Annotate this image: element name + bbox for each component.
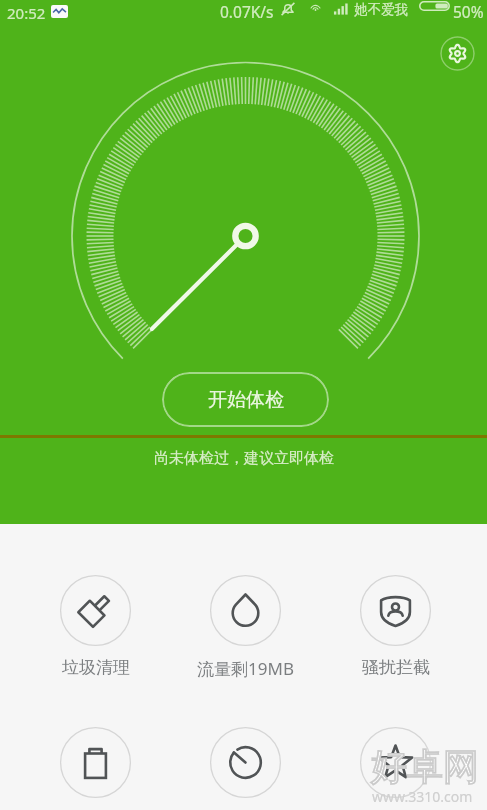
staticText: 垃圾清理 (62, 657, 130, 678)
button[interactable]: 垃圾清理 (29, 575, 161, 690)
button[interactable]: 开始体检 (162, 372, 329, 427)
button[interactable]: 应用管理 (329, 727, 461, 810)
staticText: 50% (453, 1, 484, 22)
staticText: 流量剩19MB (197, 657, 294, 680)
staticText: 她不爱我 (354, 1, 408, 18)
staticText: 20:52 (7, 3, 46, 23)
button[interactable]: Settings (440, 36, 475, 71)
button[interactable]: 骚扰拦截 (329, 575, 461, 690)
staticText: 骚扰拦截 (362, 657, 430, 678)
button[interactable]: 流量剩19MB (179, 575, 311, 690)
staticText: 好卓网 (371, 744, 479, 789)
button[interactable]: 病毒查杀 (179, 727, 311, 810)
staticText: 好卓网 (371, 744, 479, 789)
staticText: 尚未体检过，建议立即体检 (154, 449, 334, 468)
button[interactable]: 手机加速 (29, 727, 161, 810)
staticText: 0.07K/s (220, 1, 274, 22)
staticText: 开始体检 (208, 388, 284, 412)
staticText: www.3310.com (372, 787, 473, 806)
